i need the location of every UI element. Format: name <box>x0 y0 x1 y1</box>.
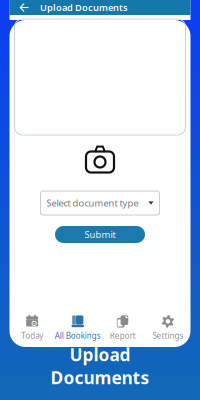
staticText: All Bookings <box>55 330 101 341</box>
staticText: Submit <box>84 228 115 241</box>
button[interactable]: Submit <box>55 226 145 243</box>
button[interactable]: All Bookings <box>55 314 100 341</box>
staticText: Settings <box>152 330 183 341</box>
staticText: Upload <box>69 343 130 366</box>
staticText: Select document type <box>46 197 138 209</box>
staticText: Documents <box>50 366 149 389</box>
button[interactable]: Select document type <box>40 191 159 215</box>
staticText: Today <box>21 330 43 341</box>
button[interactable]: Today <box>9 314 55 341</box>
staticText: Upload Documents <box>40 1 128 14</box>
button[interactable]: Report <box>100 314 145 341</box>
button[interactable]: Back <box>16 0 32 14</box>
staticText: Report <box>110 330 136 341</box>
button[interactable]: Settings <box>145 314 190 341</box>
